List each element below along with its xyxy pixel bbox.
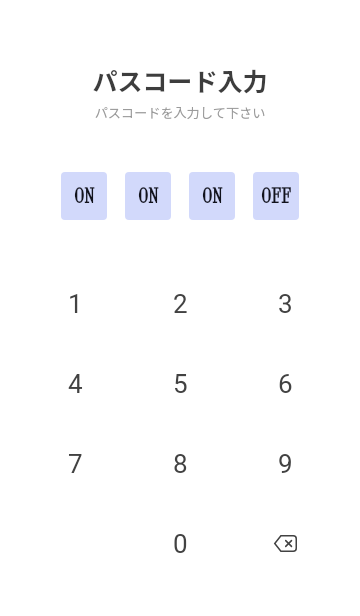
staticText: 7 [68,449,83,479]
staticText: ON [202,184,222,208]
button[interactable]: 7 [23,424,128,504]
staticText: ON [74,184,94,208]
button[interactable]: 6 [233,344,338,424]
staticText: 3 [278,289,293,319]
other: Backspace [274,535,297,552]
staticText: 9 [278,449,293,479]
staticText: 1 [68,289,83,319]
staticText: ON [138,184,158,208]
button[interactable]: Backspace [233,504,338,584]
button[interactable]: OFF [253,172,299,220]
button[interactable]: 9 [233,424,338,504]
staticText: パスコードを入力して下さい [94,103,266,122]
button[interactable]: 8 [128,424,233,504]
button[interactable]: ON [189,172,235,220]
button[interactable]: 4 [23,344,128,424]
button[interactable]: 3 [233,264,338,344]
staticText: 8 [173,449,188,479]
button[interactable]: ON [125,172,171,220]
button[interactable]: 1 [23,264,128,344]
staticText: パスコード入力 [92,62,268,98]
staticText: 6 [278,369,293,399]
button[interactable]: ON [61,172,107,220]
staticText: 2 [173,289,188,319]
button[interactable]: 0 [128,504,233,584]
staticText: 4 [68,369,83,399]
staticText: OFF [261,184,291,208]
button[interactable]: 5 [128,344,233,424]
button[interactable]: 2 [128,264,233,344]
staticText: 5 [173,369,188,399]
staticText: 0 [173,529,188,559]
